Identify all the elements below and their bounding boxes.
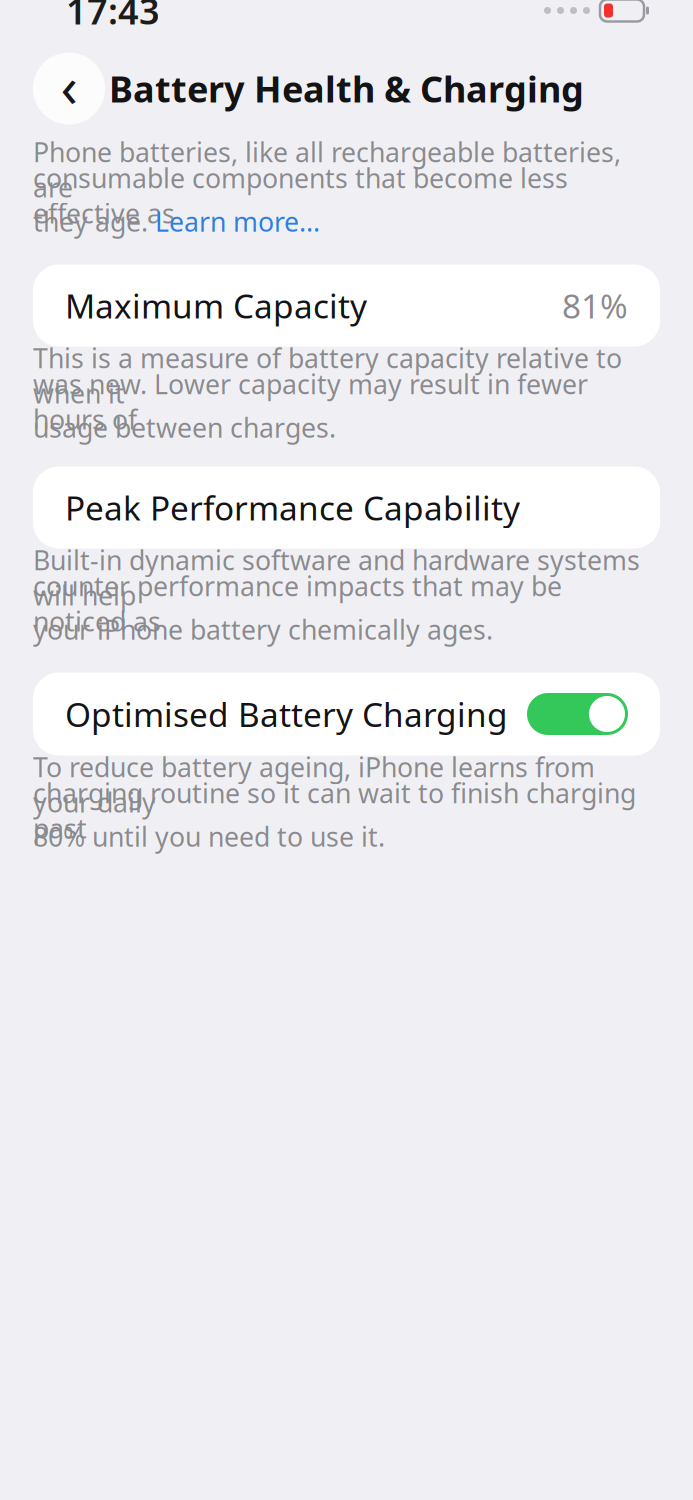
staticText: 80% until you need to use it.: [33, 819, 385, 854]
button[interactable]: Maximum Capacity: [33, 264, 660, 346]
staticText: ‹: [60, 48, 77, 123]
staticText: Maximum Capacity: [65, 283, 367, 328]
staticText: This is a measure of battery capacity re…: [33, 340, 622, 411]
staticText: counter performance impacts that may be …: [33, 568, 562, 639]
staticText: your iPhone battery chemically ages.: [33, 612, 493, 647]
staticText: charging routine so it can wait to finis…: [33, 775, 636, 846]
staticText: they age.: [33, 204, 155, 239]
staticText: Battery Health & Charging: [109, 65, 584, 112]
staticText: usage between charges.: [33, 410, 336, 445]
staticText: 81%: [562, 283, 628, 328]
staticText: consumable components that become less e…: [33, 160, 568, 231]
staticText: 17:43: [66, 0, 160, 34]
button[interactable]: Peak Performance Capability: [33, 466, 660, 548]
staticText: was new. Lower capacity may result in fe…: [33, 366, 588, 437]
button[interactable]: Learn more...: [155, 204, 320, 239]
staticText: Learn more...: [155, 204, 320, 239]
staticText: To reduce battery ageing, iPhone learns …: [33, 749, 595, 820]
button[interactable]: Optimised Battery Charging: [527, 693, 628, 735]
staticText: Phone batteries, like all rechargeable b…: [33, 134, 621, 205]
staticText: Built-in dynamic software and hardware s…: [33, 542, 640, 613]
staticText: Optimised Battery Charging: [65, 692, 508, 736]
staticText: Peak Performance Capability: [65, 485, 520, 530]
button[interactable]: Back: [33, 52, 105, 124]
